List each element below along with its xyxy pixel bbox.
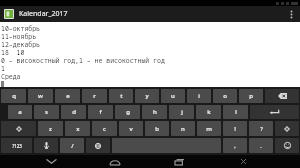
staticText: c — [103, 125, 106, 133]
staticText: d — [72, 108, 76, 116]
staticText: 11–ноябрь — [1, 32, 37, 40]
staticText: u — [171, 92, 175, 100]
button[interactable]: e — [55, 89, 80, 103]
staticText: 10–октябрь — [1, 24, 41, 32]
button[interactable]: d — [61, 105, 86, 119]
button[interactable]: Home — [104, 155, 126, 168]
staticText: g — [126, 108, 130, 116]
staticText: n — [181, 125, 185, 133]
button[interactable]: j — [169, 105, 194, 119]
staticText: r — [93, 92, 96, 100]
staticText: z — [49, 125, 52, 133]
staticText: 18 10 — [1, 48, 25, 56]
button[interactable]: / — [60, 138, 84, 153]
button[interactable]: l — [223, 105, 248, 119]
staticText: j — [181, 108, 183, 116]
staticText: e — [66, 92, 70, 100]
staticText: / — [71, 142, 74, 150]
button[interactable]: p — [239, 89, 263, 103]
staticText: s — [45, 108, 48, 116]
button[interactable]: s — [34, 105, 59, 119]
staticText: k — [207, 108, 211, 116]
staticText: q — [12, 92, 16, 100]
button[interactable]: q — [1, 89, 26, 103]
button[interactable]: k — [196, 105, 221, 119]
staticText: 12–декабрь — [1, 40, 41, 48]
button[interactable]: f — [88, 105, 113, 119]
staticText: ?123 — [12, 143, 22, 149]
staticText: ! — [234, 125, 236, 133]
button[interactable]: More options — [286, 6, 296, 22]
staticText: h — [153, 108, 157, 116]
staticText: m — [206, 125, 212, 133]
staticText: p — [249, 92, 253, 100]
button[interactable]: i — [187, 89, 211, 103]
staticText: w — [38, 92, 43, 100]
staticText: i — [198, 92, 200, 100]
button[interactable]: h — [142, 105, 167, 119]
staticText: b — [155, 125, 159, 133]
button[interactable]: m — [197, 121, 221, 136]
staticText: f — [99, 108, 102, 116]
staticText: o — [223, 92, 227, 100]
button[interactable]: Backspace — [265, 89, 299, 103]
button[interactable]: Shift — [1, 121, 36, 136]
button[interactable]: y — [135, 89, 159, 103]
button[interactable]: Recent apps — [168, 155, 190, 168]
button[interactable]: Enter — [250, 105, 299, 119]
button[interactable]: v — [119, 121, 143, 136]
button[interactable]: c — [92, 121, 117, 136]
button[interactable]: Back — [40, 155, 62, 168]
button[interactable]: Voice input — [34, 138, 58, 153]
staticText: ? — [260, 125, 263, 133]
button[interactable]: n — [171, 121, 195, 136]
staticText: x — [76, 125, 80, 133]
button[interactable]: x — [65, 121, 90, 136]
staticText: 0 – високостный год,1 – не високостный г… — [1, 56, 165, 64]
staticText: 1 — [1, 64, 5, 72]
button[interactable]: r — [82, 89, 107, 103]
button[interactable]: ! — [223, 121, 247, 136]
button[interactable]: Change language — [86, 138, 110, 153]
button[interactable]: g — [115, 105, 140, 119]
staticText: y — [145, 92, 149, 100]
button[interactable]: Emoji — [275, 138, 299, 153]
staticText: v — [129, 125, 133, 133]
button[interactable]: z — [38, 121, 63, 136]
button[interactable]: b — [145, 121, 169, 136]
staticText: . — [260, 142, 262, 150]
staticText: t — [120, 92, 123, 100]
staticText: Kalendar_2017 — [19, 9, 68, 19]
button[interactable]: ?123 — [1, 138, 32, 153]
staticText: , — [234, 142, 236, 150]
button[interactable]: Switch keyboard — [232, 155, 254, 168]
button[interactable]: ? — [249, 121, 273, 136]
staticText: l — [235, 108, 237, 116]
staticText: Среда — [1, 72, 21, 80]
button[interactable]: Shift — [275, 121, 299, 136]
button[interactable]: o — [213, 89, 237, 103]
staticText: a — [18, 108, 22, 116]
button[interactable]: , — [223, 138, 247, 153]
button[interactable]: u — [161, 89, 185, 103]
button[interactable]: a — [8, 105, 32, 119]
button[interactable]: w — [28, 89, 53, 103]
button[interactable]: . — [249, 138, 273, 153]
button[interactable]: t — [109, 89, 133, 103]
